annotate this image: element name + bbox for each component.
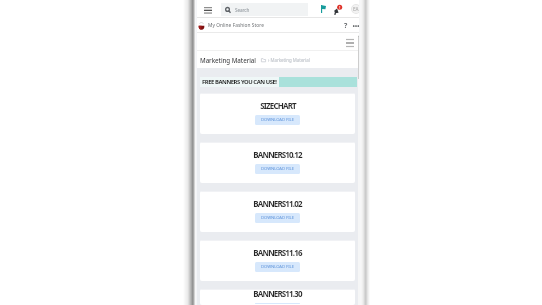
staticText: FREE BANNERS YOU CAN USE! xyxy=(202,78,277,86)
staticText: BANNERS10.12 xyxy=(253,149,302,160)
staticText: Marketing Material xyxy=(200,56,256,64)
staticText: BANNERS11.02 xyxy=(253,198,302,209)
staticText: My Online Fashion Store xyxy=(208,22,264,29)
staticText: DOWNLOAD FILE xyxy=(261,215,294,221)
button[interactable]: Notifications xyxy=(330,2,344,16)
button[interactable]: Help xyxy=(341,21,351,31)
staticText: › Marketing Material xyxy=(268,57,310,63)
staticText: BANNERS11.30 xyxy=(253,289,302,299)
button[interactable]: Account xyxy=(351,4,361,14)
button[interactable]: DOWNLOAD FILE xyxy=(255,115,300,125)
button[interactable]: DOWNLOAD FILE xyxy=(255,164,300,174)
button[interactable]: My Online Fashion Store xyxy=(208,22,264,29)
button[interactable]: BANNERS11.16 xyxy=(200,240,355,281)
button[interactable]: DOWNLOAD FILE xyxy=(255,262,300,272)
button[interactable]: DOWNLOAD FILE xyxy=(255,213,300,223)
button[interactable]: Marketing Material xyxy=(200,56,256,64)
staticText: EA xyxy=(353,6,359,12)
staticText: DOWNLOAD FILE xyxy=(261,264,294,270)
button[interactable]: List view options xyxy=(343,37,357,47)
button[interactable]: BANNERS10.12 xyxy=(200,142,355,183)
staticText: BANNERS11.16 xyxy=(253,247,302,258)
button[interactable]: Flag xyxy=(316,2,330,16)
button[interactable]: Search xyxy=(221,3,308,16)
staticText: SIZECHART xyxy=(260,100,296,111)
staticText: DOWNLOAD FILE xyxy=(261,166,294,172)
staticText: DOWNLOAD FILE xyxy=(261,117,294,123)
button[interactable]: SIZECHART xyxy=(200,93,355,134)
button[interactable]: Menu xyxy=(198,3,217,16)
button[interactable]: More options xyxy=(351,21,361,31)
staticText: Search xyxy=(235,7,250,13)
staticText: ? xyxy=(344,21,348,31)
button[interactable]: BANNERS11.30 xyxy=(200,289,355,305)
button[interactable]: BANNERS11.02 xyxy=(200,191,355,232)
